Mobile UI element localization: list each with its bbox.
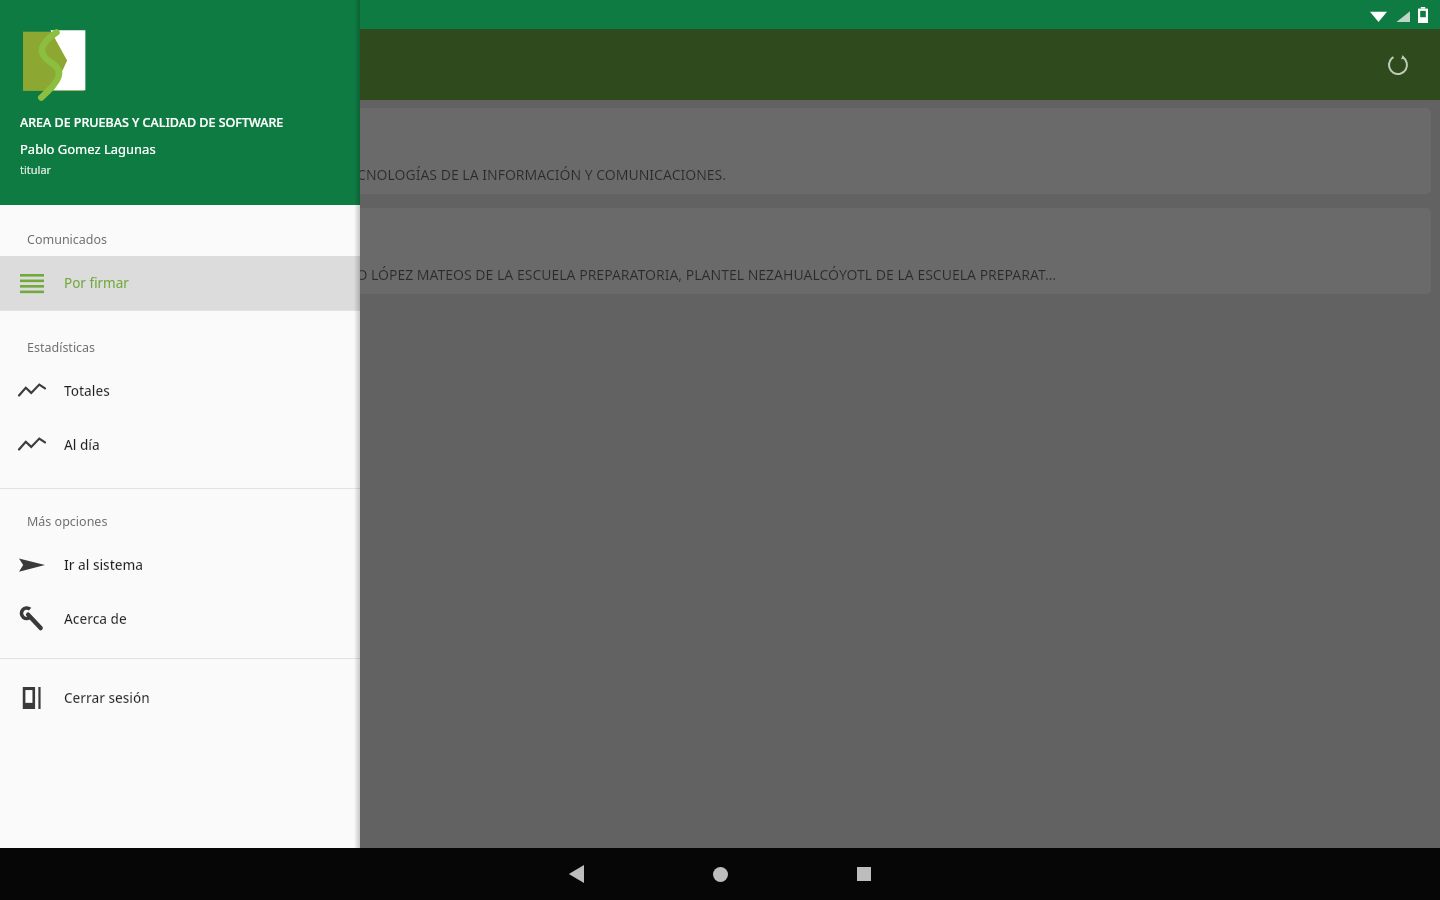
- staticText: AVISO IMPORTANTE PARA LAS DIRECCIONES DE…: [25, 165, 727, 184]
- staticText: Comunicados: [27, 231, 108, 248]
- staticText: Más opciones: [27, 513, 108, 530]
- button[interactable]: Atrás: [544, 848, 608, 900]
- button[interactable]: Por firmar: [0, 256, 360, 310]
- button[interactable]: AVISO IMPORTANTE PARA LAS DIRECCIONES DE…: [9, 108, 1431, 194]
- staticText: Pablo Gomez Lagunas: [20, 140, 156, 158]
- button[interactable]: Cerrar sesión: [0, 671, 360, 725]
- button[interactable]: Inicio: [688, 848, 752, 900]
- staticText: Cerrar sesión: [64, 689, 150, 707]
- button[interactable]: CONVOCATORIA DIRIGIDA AL PLANTEL LIC. AD…: [9, 208, 1431, 294]
- staticText: Ir al sistema: [64, 556, 144, 574]
- button[interactable]: Totales: [0, 364, 360, 418]
- button[interactable]: Ir al sistema: [0, 538, 360, 592]
- staticText: Acerca de: [64, 610, 127, 628]
- button[interactable]: Acerca de: [0, 592, 360, 646]
- button[interactable]: Actualizar: [1374, 41, 1422, 89]
- staticText: Estadísticas: [27, 339, 96, 356]
- staticText: titular: [20, 162, 52, 177]
- staticText: Totales: [64, 382, 110, 400]
- staticText: Por firmar: [64, 274, 129, 292]
- button[interactable]: Al día: [0, 418, 360, 472]
- staticText: AREA DE PRUEBAS Y CALIDAD DE SOFTWARE: [20, 114, 284, 131]
- staticText: CONVOCATORIA DIRIGIDA AL PLANTEL LIC. AD…: [25, 265, 1057, 284]
- button[interactable]: Recientes: [832, 848, 896, 900]
- staticText: Al día: [64, 436, 100, 454]
